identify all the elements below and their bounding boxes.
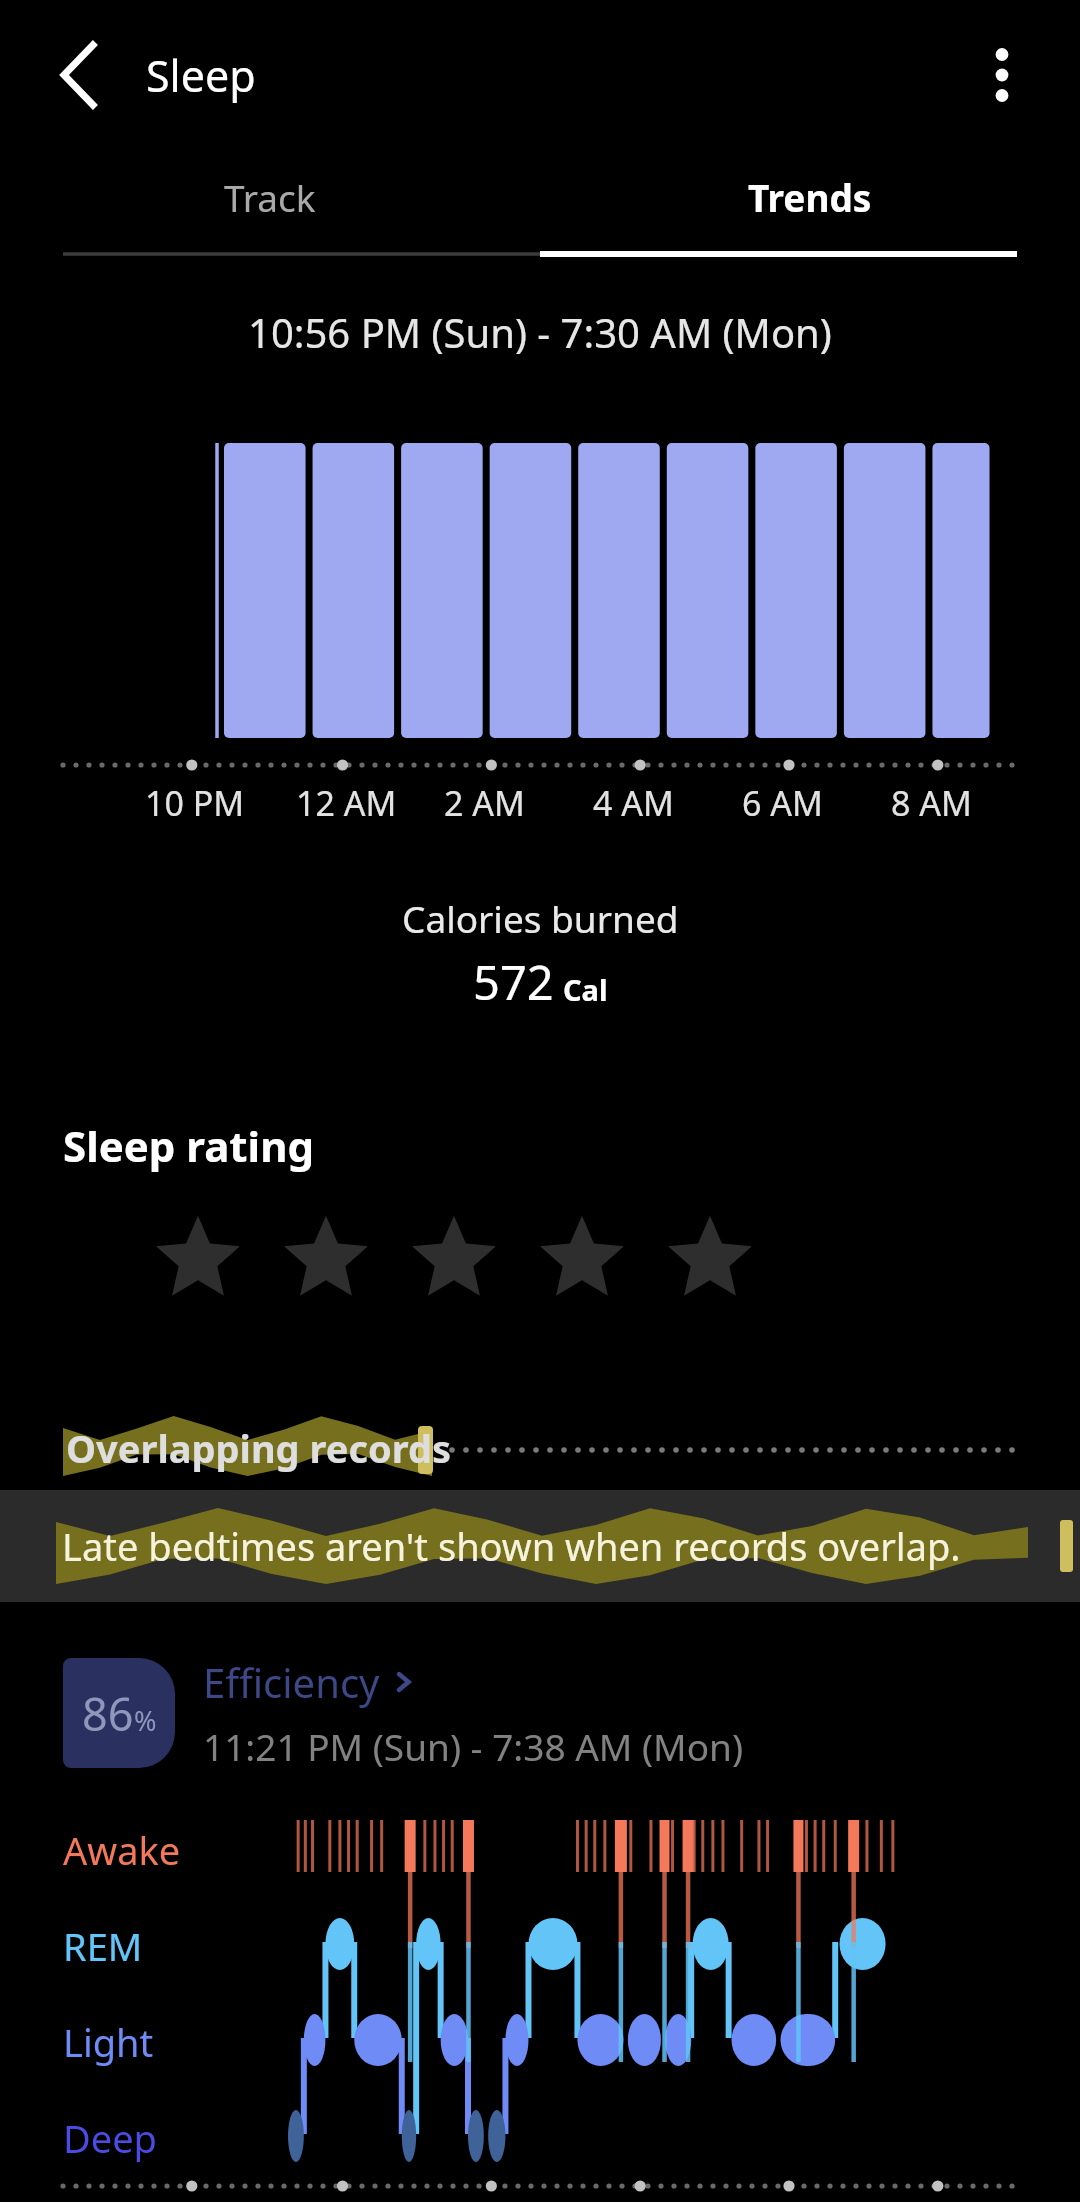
staticText: REM (63, 1920, 143, 1972)
button[interactable]: Rate 5 stars (662, 1212, 758, 1308)
staticText: Awake (63, 1824, 181, 1876)
button[interactable]: Overlapping records (0, 1400, 1080, 1496)
staticText: Deep (63, 2112, 157, 2164)
staticText: 2 AM (444, 780, 525, 826)
staticText: 86 (82, 1683, 134, 1744)
staticText: Efficiency (203, 1655, 380, 1709)
staticText: Sleep rating (63, 1117, 314, 1174)
staticText: 4 AM (593, 780, 674, 826)
staticText: Late bedtimes aren't shown when records … (62, 1520, 961, 1572)
staticText: Track (224, 172, 316, 222)
button[interactable]: More options (956, 29, 1048, 121)
button[interactable]: Rate 2 stars (278, 1212, 374, 1308)
button[interactable]: Rate 3 stars (406, 1212, 502, 1308)
button[interactable]: 86 (63, 1655, 1080, 1771)
staticText: 572 (473, 950, 554, 1014)
staticText: 11:21 PM (Sun) - 7:38 AM (Mon) (203, 1721, 744, 1771)
button[interactable]: Rate 1 stars (150, 1212, 246, 1308)
staticText: Overlapping records (66, 1422, 452, 1474)
staticText: Sleep (146, 46, 256, 105)
staticText: 10 PM (145, 780, 245, 826)
button[interactable]: Track (0, 150, 540, 260)
staticText: Calories burned (402, 893, 679, 943)
staticText: 6 AM (742, 780, 823, 826)
staticText: 10:56 PM (Sun) - 7:30 AM (Mon) (248, 305, 832, 359)
staticText: Light (63, 2016, 154, 2068)
staticText: % (134, 1702, 157, 1739)
staticText: Cal (563, 970, 608, 1009)
button[interactable]: Back (30, 25, 130, 125)
staticText: Trends (748, 172, 872, 222)
staticText: 12 AM (296, 780, 397, 826)
button[interactable]: Rate 4 stars (534, 1212, 630, 1308)
staticText: 8 AM (891, 780, 972, 826)
button[interactable]: Trends (540, 150, 1080, 260)
